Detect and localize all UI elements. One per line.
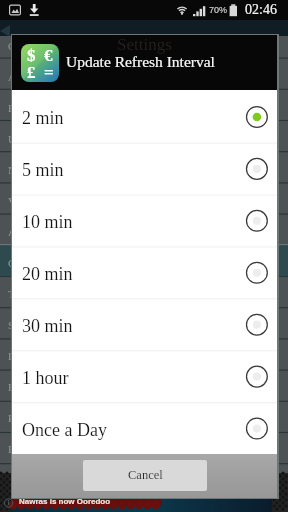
staticText: N <box>8 164 16 176</box>
staticText: £ <box>27 63 36 80</box>
staticText: Nawras is now Ooredoo <box>19 497 111 506</box>
staticText: H <box>8 381 16 393</box>
button[interactable]: 5 min <box>12 142 277 194</box>
staticText: C <box>8 40 16 52</box>
staticText: R <box>8 102 16 114</box>
staticText: 2 min <box>22 108 64 128</box>
staticText: U <box>8 133 16 145</box>
staticText: 02:46 <box>245 2 277 18</box>
staticText: A <box>8 226 16 238</box>
staticText: A <box>8 71 16 83</box>
staticText: Once a Day <box>22 420 107 440</box>
button[interactable]: Cancel <box>83 460 207 491</box>
staticText: L <box>8 350 15 362</box>
button[interactable]: Once a Day <box>12 402 277 454</box>
other: Download complete <box>28 3 41 16</box>
staticText: 70% <box>209 5 228 15</box>
staticText: 1 hour <box>22 368 69 388</box>
staticText: Settings <box>117 35 172 54</box>
other: Screenshot captured <box>9 4 21 16</box>
staticText: B <box>8 443 16 455</box>
button[interactable]: 20 min <box>12 246 277 298</box>
staticText: = <box>44 63 54 80</box>
staticText: T <box>8 288 15 300</box>
staticText: P <box>8 412 15 424</box>
staticText: 30 min <box>22 316 73 336</box>
staticText: C <box>8 257 16 269</box>
staticText: 5 min <box>22 160 64 180</box>
button[interactable]: 10 min <box>12 194 277 246</box>
staticText: Update Refresh Interval <box>66 53 215 70</box>
staticText: S <box>8 319 15 331</box>
button[interactable]: 30 min <box>12 298 277 350</box>
button[interactable]: 2 min <box>12 90 277 142</box>
staticText: V <box>8 195 16 207</box>
button[interactable]: 1 hour <box>12 350 277 402</box>
staticText: € <box>44 46 53 63</box>
staticText: $ <box>27 46 36 63</box>
staticText: 20 min <box>22 264 73 284</box>
staticText: 10 min <box>22 212 73 232</box>
staticText: Cancel <box>128 468 163 482</box>
